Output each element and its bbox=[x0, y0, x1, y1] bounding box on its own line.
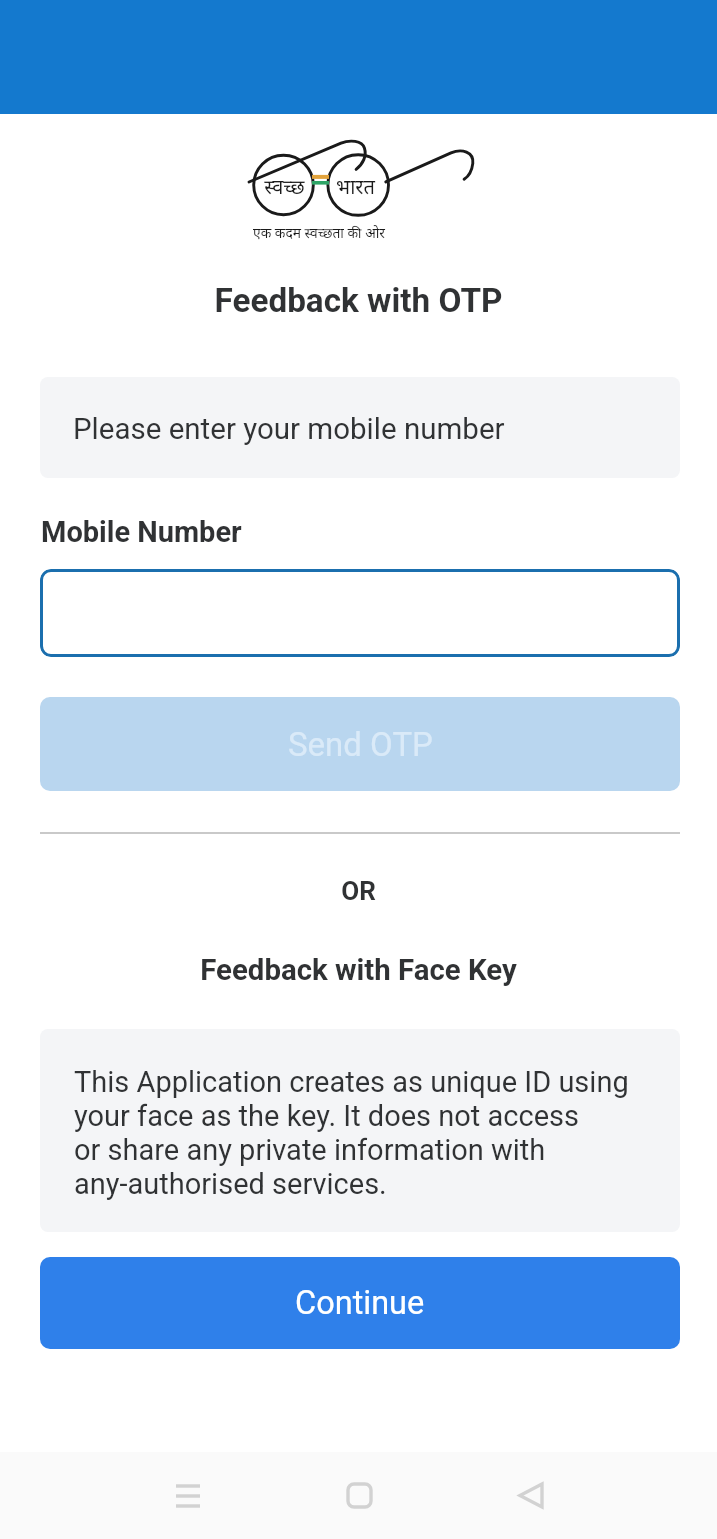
button[interactable]: Back bbox=[486, 1452, 576, 1539]
staticText: Mobile Number bbox=[41, 515, 242, 549]
button[interactable]: Recent apps bbox=[143, 1452, 233, 1539]
staticText: This Application creates as unique ID us… bbox=[74, 1065, 629, 1201]
staticText: Send OTP bbox=[288, 725, 433, 764]
staticText: भारत bbox=[336, 176, 375, 202]
staticText: स्वच्छ bbox=[264, 176, 305, 202]
staticText: Continue bbox=[295, 1284, 425, 1322]
staticText: Feedback with Face Key bbox=[0, 953, 717, 987]
button[interactable]: Mobile number input bbox=[40, 569, 680, 657]
staticText: Feedback with OTP bbox=[0, 281, 717, 320]
button[interactable]: Send OTP bbox=[40, 697, 680, 791]
staticText: एक कदम स्वच्छता की ओर bbox=[253, 226, 385, 244]
button[interactable]: Home bbox=[314, 1452, 404, 1539]
staticText: OR bbox=[0, 876, 717, 906]
button[interactable]: Continue bbox=[40, 1257, 680, 1349]
staticText: Please enter your mobile number bbox=[73, 412, 505, 447]
